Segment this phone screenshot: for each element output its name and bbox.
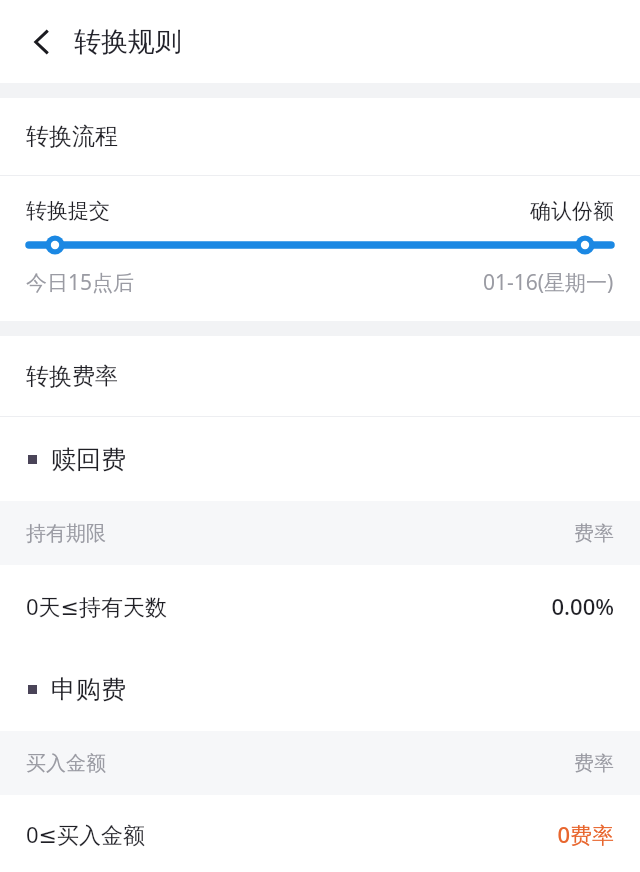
staticText: 0≤买入金额: [26, 819, 146, 849]
staticText: 确认份额: [530, 198, 614, 224]
staticText: 赎回费: [51, 444, 126, 475]
button[interactable]: 0天≤持有天数: [0, 565, 640, 647]
staticText: 持有期限: [26, 521, 106, 546]
staticText: 买入金额: [26, 751, 106, 776]
staticText: 今日15点后: [26, 268, 135, 297]
staticText: 转换流程: [26, 122, 118, 151]
staticText: 转换费率: [26, 362, 118, 391]
staticText: 01-16(星期一): [483, 268, 614, 297]
staticText: 转换规则: [74, 25, 182, 59]
button[interactable]: 0≤买入金额: [0, 795, 640, 872]
staticText: 转换提交: [26, 198, 110, 224]
staticText: 0费率: [557, 819, 614, 849]
staticText: 费率: [574, 751, 614, 776]
staticText: 0天≤持有天数: [26, 591, 168, 621]
staticText: 申购费: [51, 674, 126, 705]
button[interactable]: Back: [16, 16, 68, 68]
staticText: 0.00%: [551, 591, 614, 621]
staticText: 费率: [574, 521, 614, 546]
